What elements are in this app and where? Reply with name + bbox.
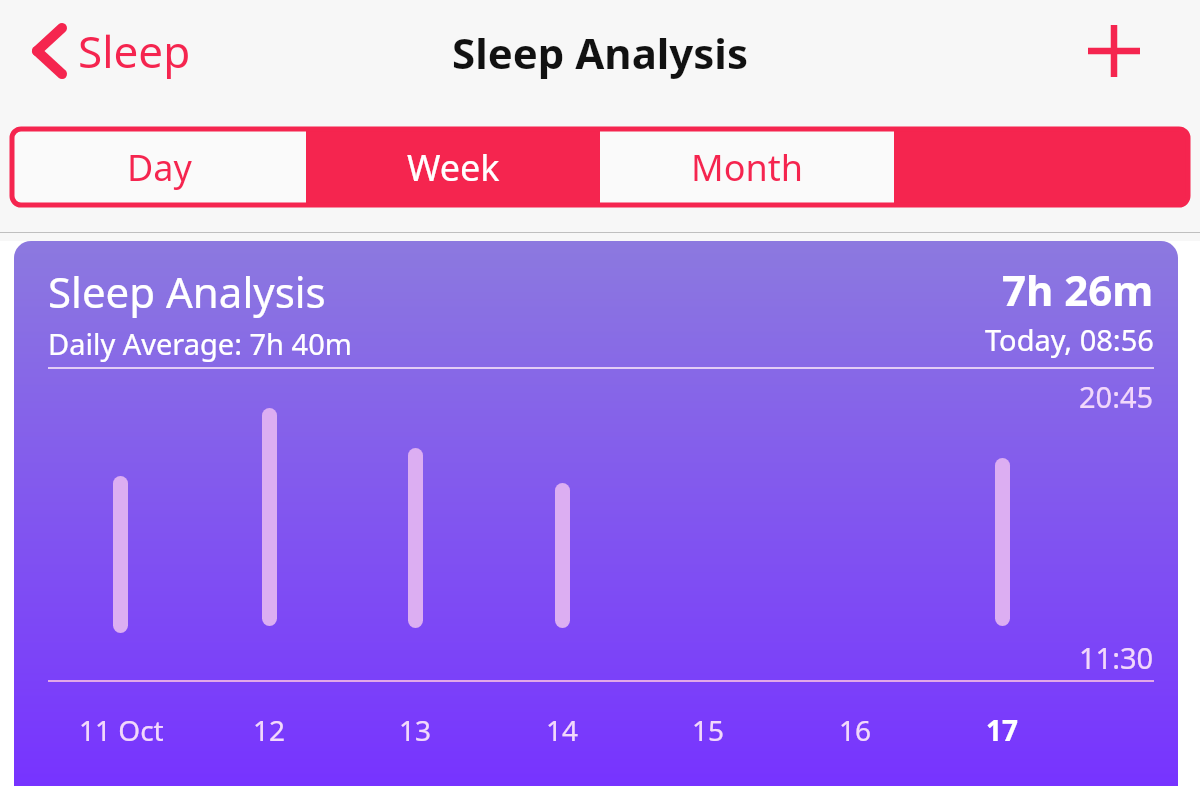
staticText: Month — [691, 143, 803, 192]
button[interactable]: Sleep — [24, 15, 199, 87]
staticText: Sleep Analysis — [452, 24, 749, 81]
button[interactable]: Sleep Analysis — [14, 241, 1178, 786]
staticText: Daily Average: 7h 40m — [48, 324, 352, 363]
button[interactable]: Week — [306, 129, 600, 205]
button[interactable]: Day — [12, 129, 306, 205]
staticText: 16 — [839, 711, 872, 749]
button[interactable]: Add sleep data — [1086, 23, 1142, 79]
staticText: 7h 26m — [1002, 261, 1154, 318]
staticText: Day — [127, 143, 192, 192]
staticText: 17 — [986, 711, 1019, 749]
staticText: 12 — [253, 711, 286, 749]
staticText: 11 Oct — [79, 711, 164, 749]
staticText: 13 — [399, 711, 432, 749]
staticText: 20:45 — [1079, 377, 1154, 416]
staticText: 15 — [692, 711, 725, 749]
staticText: 14 — [546, 711, 579, 749]
staticText: Week — [407, 143, 500, 192]
staticText: Today, 08:56 — [985, 320, 1154, 359]
staticText: 11:30 — [1079, 638, 1154, 677]
staticText: Sleep Analysis — [48, 263, 326, 320]
staticText: Sleep — [78, 21, 191, 81]
button[interactable]: Month — [600, 129, 894, 205]
